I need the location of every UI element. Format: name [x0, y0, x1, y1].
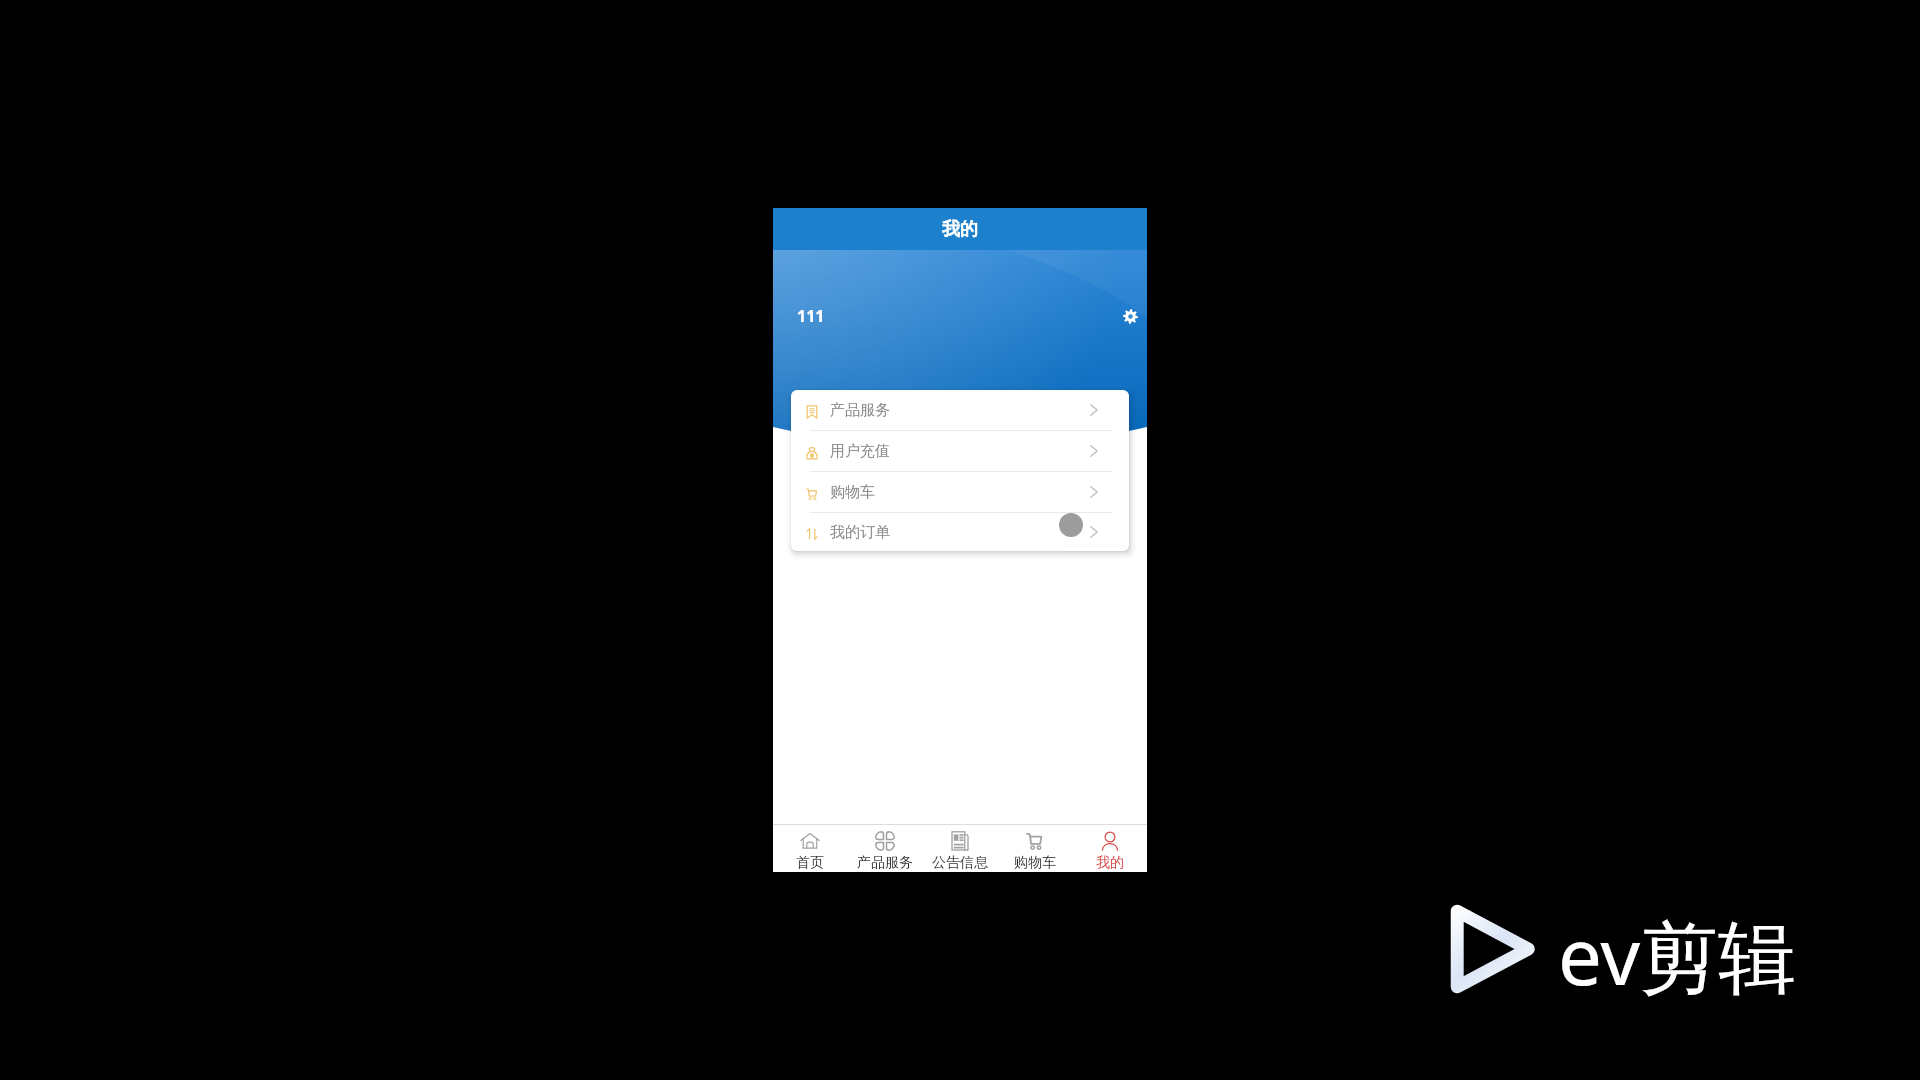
button[interactable]: 产品服务 — [847, 825, 922, 872]
staticText: 我的 — [1096, 854, 1124, 872]
button[interactable]: 购物车 — [791, 472, 1129, 512]
staticText: 产品服务 — [857, 854, 913, 872]
button[interactable]: 首页 — [773, 825, 847, 872]
staticText: ev剪辑 — [1558, 902, 1797, 1009]
staticText: 购物车 — [830, 483, 875, 502]
staticText: 公告信息 — [932, 854, 988, 872]
button[interactable]: 公告信息 — [922, 825, 997, 872]
staticText: 111 — [797, 305, 825, 327]
staticText: 购物车 — [1014, 854, 1056, 872]
button[interactable]: 产品服务 — [791, 390, 1129, 430]
button[interactable]: 购物车 — [997, 825, 1072, 872]
staticText: 我的 — [942, 218, 978, 241]
staticText: 产品服务 — [830, 401, 890, 420]
staticText: 首页 — [796, 854, 824, 872]
staticText: 我的订单 — [830, 523, 890, 542]
button[interactable]: 我的订单 — [791, 513, 1129, 551]
staticText: 用户充值 — [830, 442, 890, 461]
button[interactable]: 用户充值 — [791, 431, 1129, 471]
button[interactable]: 我的 — [1072, 825, 1147, 872]
button[interactable]: Settings — [1118, 304, 1142, 328]
